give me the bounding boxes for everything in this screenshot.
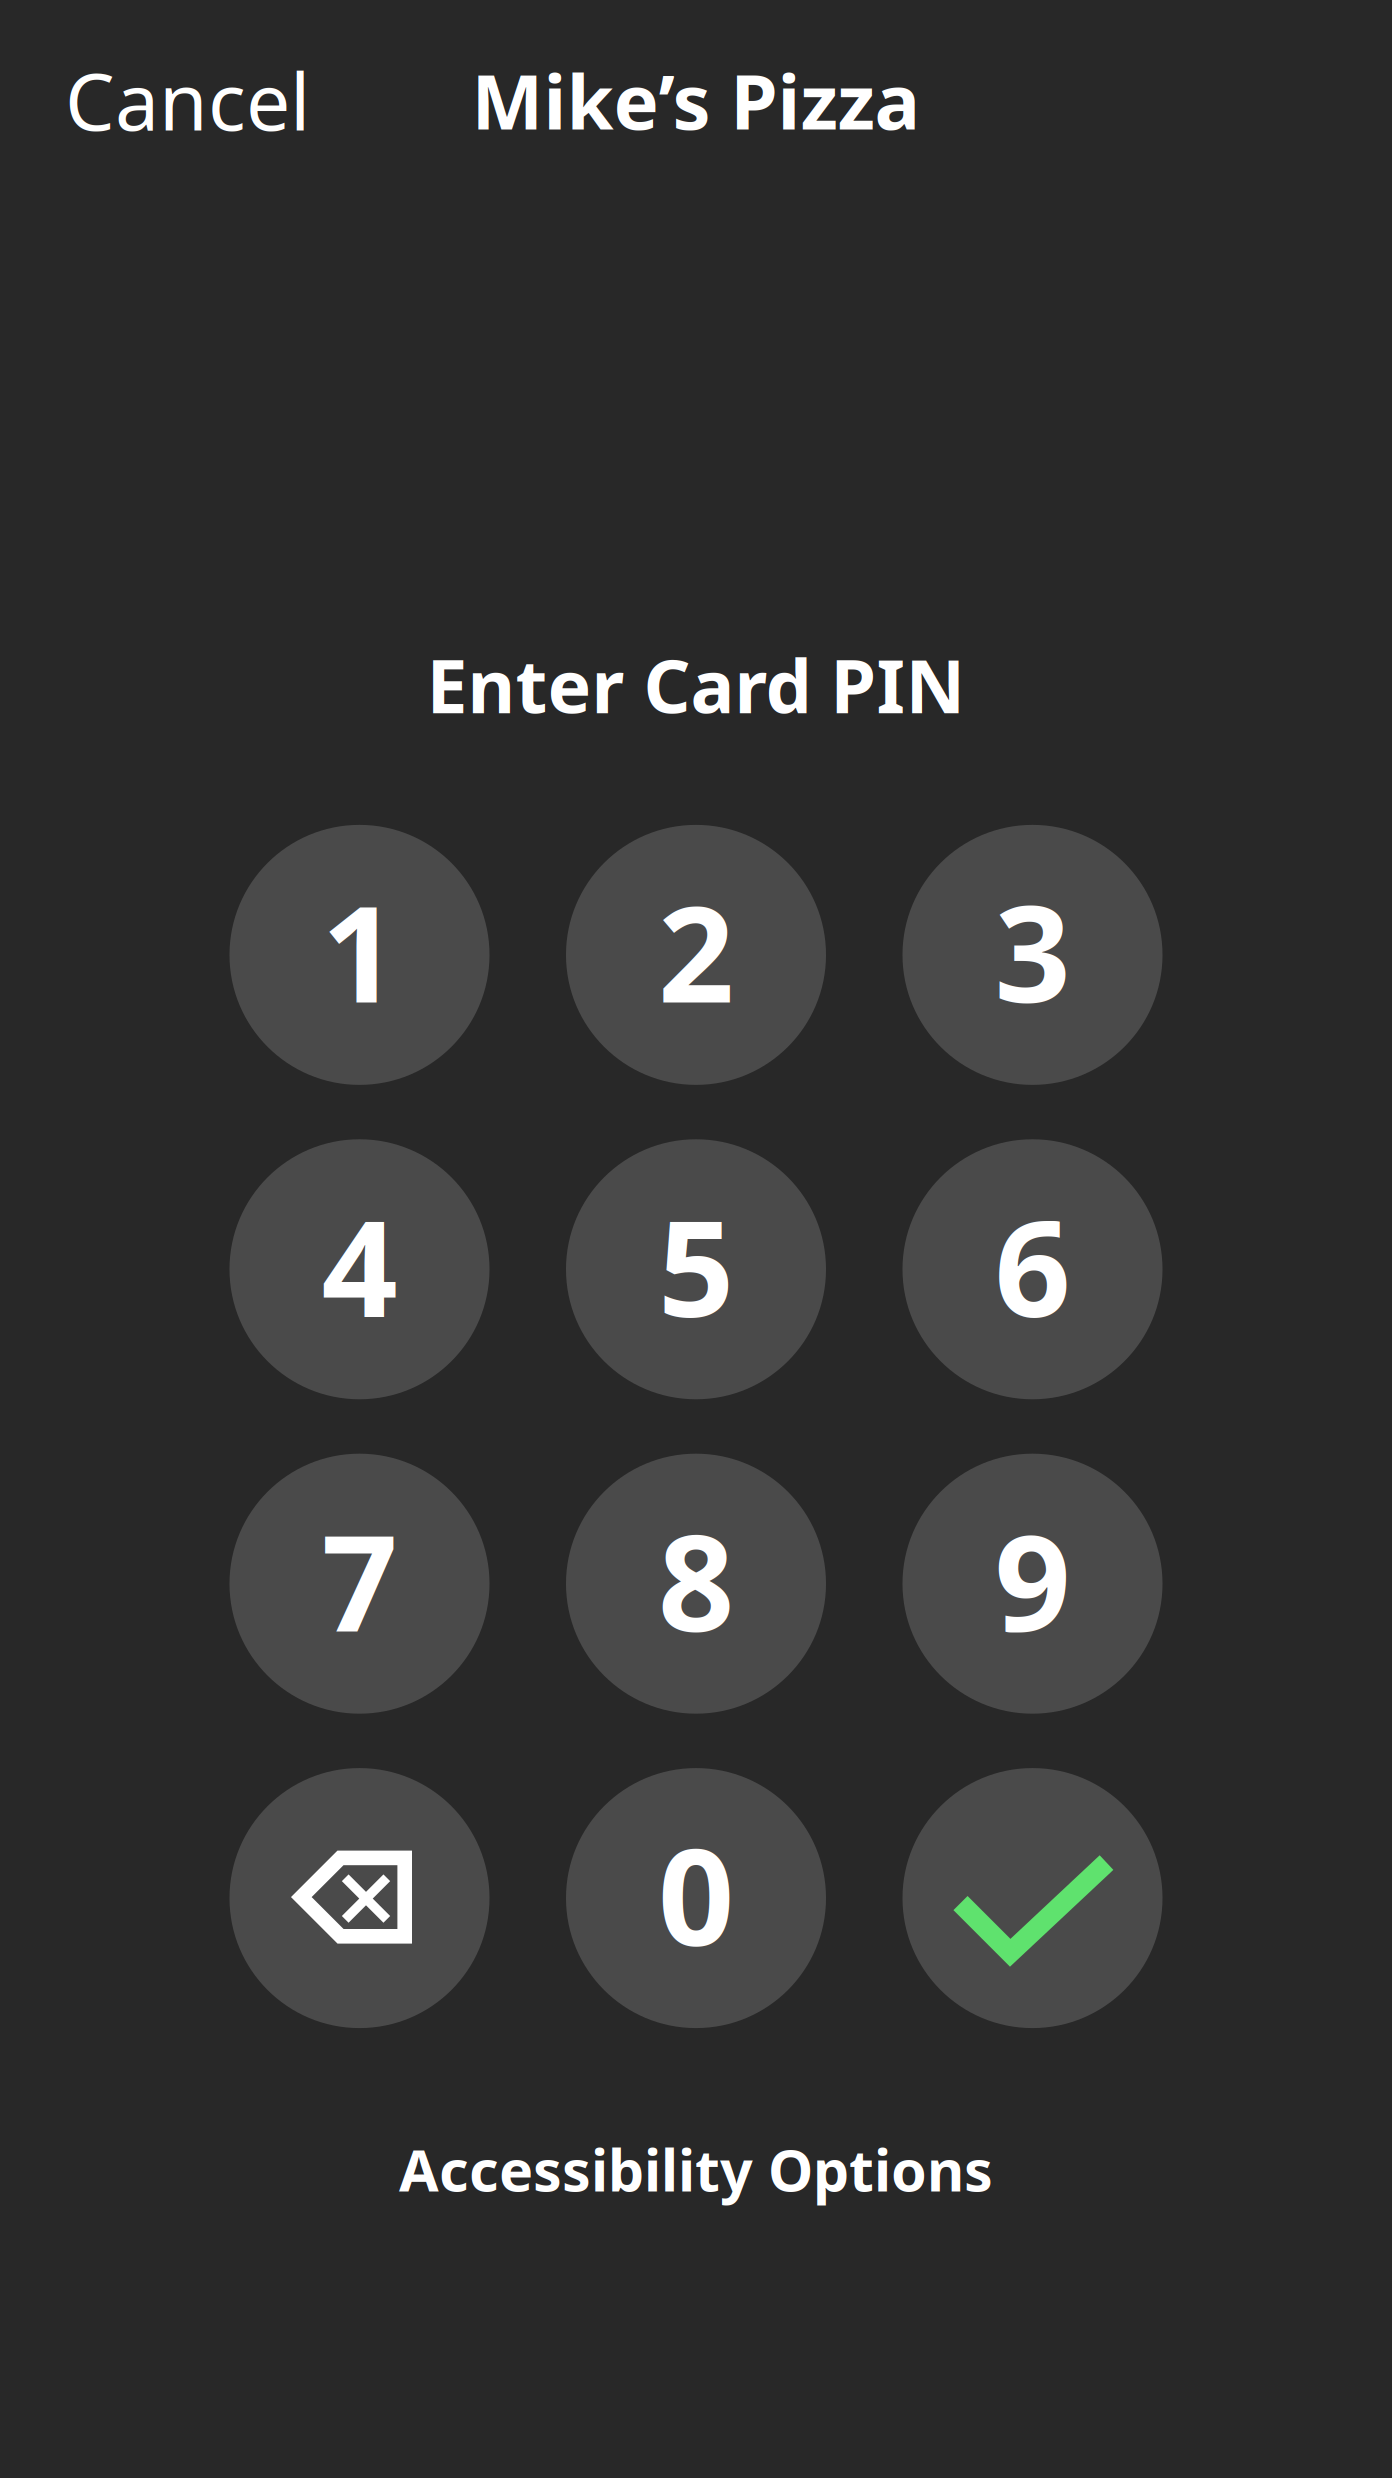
button[interactable]: 2 xyxy=(566,825,826,1085)
staticText: 4 xyxy=(321,1177,397,1354)
staticText: 0 xyxy=(658,1806,734,1983)
button[interactable]: 9 xyxy=(902,1454,1162,1714)
staticText: 1 xyxy=(321,862,397,1039)
button[interactable]: 7 xyxy=(229,1454,489,1714)
staticText: 5 xyxy=(658,1177,734,1354)
staticText: 6 xyxy=(994,1177,1070,1354)
staticText: Enter Card PIN xyxy=(426,636,965,733)
button[interactable]: 6 xyxy=(902,1139,1162,1399)
button[interactable]: 8 xyxy=(566,1454,826,1714)
staticText: 7 xyxy=(321,1491,397,1668)
button[interactable]: 1 xyxy=(229,825,489,1085)
staticText: 2 xyxy=(658,862,734,1039)
button[interactable]: 5 xyxy=(566,1139,826,1399)
button[interactable]: 3 xyxy=(902,825,1162,1085)
button[interactable]: 0 xyxy=(566,1768,826,2028)
staticText: Mike’s Pizza xyxy=(471,49,920,150)
staticText: 9 xyxy=(994,1491,1070,1668)
button[interactable]: Cancel xyxy=(65,66,310,134)
button[interactable]: Delete xyxy=(229,1768,489,2028)
button[interactable]: Confirm PIN xyxy=(902,1768,1162,2028)
staticText: 3 xyxy=(994,862,1070,1039)
staticText: 8 xyxy=(658,1491,734,1668)
staticText: Accessibility Options xyxy=(399,2131,993,2207)
button[interactable]: 4 xyxy=(229,1139,489,1399)
button[interactable]: Accessibility Options xyxy=(399,2131,993,2207)
staticText: Cancel xyxy=(65,48,310,152)
